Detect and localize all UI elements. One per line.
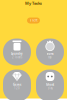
staticText: Laundry [11, 52, 23, 55]
staticText: 120 [14, 86, 20, 90]
button[interactable]: 3 left [27, 17, 40, 23]
button[interactable]: Ghost [36, 69, 64, 100]
staticText: Ghost [46, 83, 54, 86]
staticText: play [47, 86, 52, 90]
staticText: tap [48, 55, 52, 59]
button[interactable]: Gems [3, 69, 31, 100]
staticText: 3 left [29, 19, 37, 22]
staticText: Gems [13, 83, 21, 86]
staticText: Burst [46, 52, 53, 55]
staticText: 2 loads [12, 55, 22, 59]
button[interactable]: Laundry [3, 38, 31, 65]
staticText: My Tasks [25, 0, 42, 6]
button[interactable]: Burst [36, 38, 64, 65]
